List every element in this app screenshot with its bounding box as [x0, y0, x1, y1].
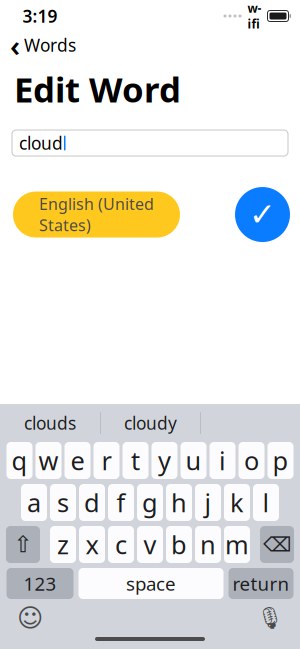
button[interactable]: o: [238, 442, 264, 479]
button[interactable]: p: [267, 442, 293, 479]
staticText: space: [126, 571, 176, 596]
staticText: r: [101, 444, 111, 477]
staticText: g: [142, 486, 158, 519]
staticText: n: [200, 528, 216, 561]
button[interactable]: English (United States): [13, 191, 180, 237]
staticText: 3:19: [22, 4, 57, 27]
button[interactable]: i: [209, 442, 235, 479]
button[interactable]: ‹: [0, 34, 86, 56]
staticText: 123: [23, 571, 56, 596]
staticText: wifi: [247, 0, 261, 32]
staticText: 🎙: [256, 606, 283, 630]
staticText: e: [70, 444, 84, 477]
button[interactable]: j: [195, 484, 221, 521]
staticText: Edit Word: [14, 66, 181, 112]
staticText: ☺: [17, 604, 43, 632]
button[interactable]: m: [224, 526, 250, 563]
staticText: i: [219, 444, 226, 477]
staticText: ‹: [10, 25, 20, 64]
staticText: ✓: [249, 196, 276, 233]
button[interactable]: Confirm: [235, 187, 290, 242]
staticText: y: [158, 444, 171, 477]
button[interactable]: Delete: [260, 526, 294, 563]
staticText: k: [230, 486, 244, 519]
button[interactable]: z: [50, 526, 76, 563]
button[interactable]: c: [108, 526, 134, 563]
staticText: c: [115, 528, 127, 561]
button[interactable]: q: [6, 442, 32, 479]
staticText: return: [232, 571, 289, 596]
button[interactable]: e: [64, 442, 90, 479]
staticText: d: [84, 486, 100, 519]
button[interactable]: d: [79, 484, 105, 521]
staticText: cloud: [19, 131, 63, 154]
button[interactable]: x: [79, 526, 105, 563]
staticText: p: [272, 444, 288, 477]
staticText: o: [244, 444, 259, 477]
button[interactable]: y: [151, 442, 177, 479]
staticText: cloudy: [124, 411, 177, 434]
button[interactable]: k: [224, 484, 250, 521]
staticText: ⇧: [13, 532, 32, 557]
staticText: Words: [24, 33, 76, 56]
staticText: clouds: [24, 411, 76, 434]
button[interactable]: cloudy: [101, 404, 200, 442]
staticText: a: [27, 486, 41, 519]
staticText: v: [143, 528, 156, 561]
button[interactable]: h: [166, 484, 192, 521]
button[interactable]: u: [180, 442, 206, 479]
staticText: j: [204, 486, 211, 519]
staticText: l: [262, 486, 269, 519]
button[interactable]: a: [21, 484, 47, 521]
button[interactable]: space: [78, 568, 223, 599]
staticText: w: [38, 444, 58, 477]
button[interactable]: Shift: [6, 526, 40, 563]
button[interactable]: r: [93, 442, 119, 479]
staticText: m: [225, 528, 249, 561]
button[interactable]: clouds: [0, 404, 100, 442]
button[interactable]: b: [166, 526, 192, 563]
staticText: English (United States): [39, 193, 154, 236]
button[interactable]: l: [253, 484, 279, 521]
staticText: t: [131, 444, 140, 477]
button[interactable]: t: [122, 442, 148, 479]
button[interactable]: s: [50, 484, 76, 521]
staticText: z: [57, 528, 69, 561]
staticText: q: [11, 444, 27, 477]
button[interactable]: w: [35, 442, 61, 479]
button[interactable]: n: [195, 526, 221, 563]
staticText: b: [171, 528, 187, 561]
staticText: s: [57, 486, 69, 519]
staticText: f: [116, 486, 125, 519]
staticText: h: [171, 486, 187, 519]
staticText: ⌫: [263, 533, 291, 556]
button[interactable]: v: [137, 526, 163, 563]
button[interactable]: f: [108, 484, 134, 521]
button[interactable]: Dictation: [254, 602, 286, 634]
button[interactable]: Return: [228, 568, 293, 599]
button[interactable]: g: [137, 484, 163, 521]
button[interactable]: Emoji: [14, 602, 46, 634]
button[interactable]: Numbers: [6, 568, 73, 599]
staticText: u: [185, 444, 201, 477]
staticText: x: [85, 528, 98, 561]
